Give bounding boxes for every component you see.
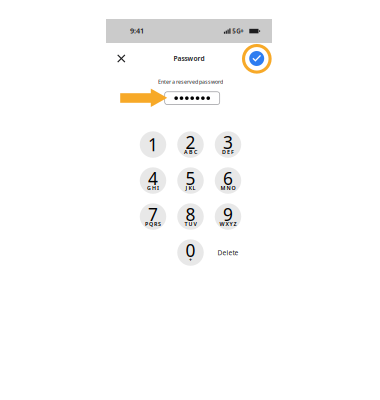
button[interactable]: Delete <box>209 235 247 271</box>
staticText: 3 <box>223 131 233 154</box>
button[interactable]: 7 <box>134 199 172 235</box>
button[interactable]: 8 <box>172 199 209 235</box>
staticText: P Q R S <box>145 220 161 228</box>
button[interactable]: 9 <box>209 199 247 235</box>
staticText: Enter a reserved password <box>158 78 223 85</box>
button[interactable]: 3 <box>209 127 247 163</box>
staticText: 9:41 <box>130 26 144 36</box>
button[interactable]: 4 <box>134 163 172 199</box>
staticText: W X Y Z <box>219 220 236 228</box>
staticText: 5G+ <box>232 27 244 35</box>
button[interactable]: 6 <box>209 163 247 199</box>
staticText: 5 <box>185 167 195 190</box>
staticText: D E F <box>222 148 234 156</box>
staticText: 1 <box>148 133 158 156</box>
button[interactable]: 0 <box>172 235 209 271</box>
button[interactable]: Confirm <box>248 49 266 67</box>
staticText: 7 <box>148 203 158 226</box>
staticText: 9 <box>223 203 233 226</box>
button[interactable]: 1 <box>134 127 172 163</box>
staticText: 2 <box>185 131 195 154</box>
button[interactable]: 5 <box>172 163 209 199</box>
staticText: G H I <box>147 184 159 192</box>
staticText: 4 <box>148 167 158 190</box>
staticText: T U V <box>184 220 196 228</box>
staticText: Delete <box>217 248 238 257</box>
staticText: + <box>189 256 192 264</box>
staticText: Password <box>173 54 204 63</box>
staticText: 6 <box>223 167 233 190</box>
staticText: M N O <box>220 184 235 192</box>
staticText: J K L <box>185 184 195 192</box>
button[interactable]: Close <box>112 49 130 67</box>
staticText: A B C <box>184 148 197 156</box>
staticText: 0 <box>185 239 195 262</box>
button[interactable]: 2 <box>172 127 209 163</box>
staticText: 8 <box>185 203 195 226</box>
